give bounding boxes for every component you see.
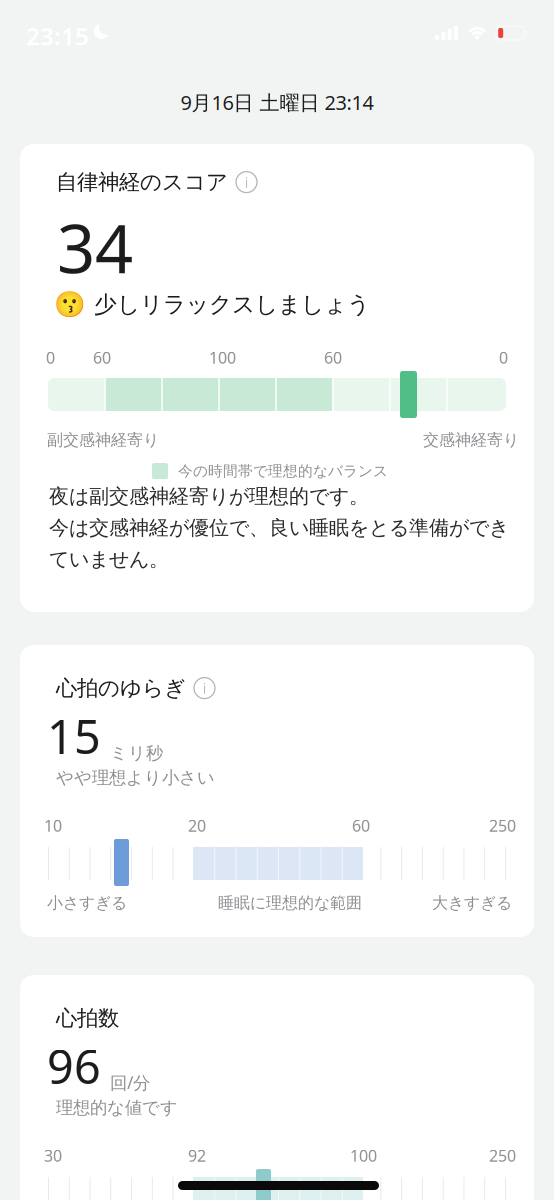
staticText: 15	[47, 705, 101, 767]
staticText: 60	[93, 347, 111, 368]
staticText: 34	[57, 203, 133, 291]
staticText: 9月16日 土曜日 23:14	[180, 89, 373, 116]
staticText: 60	[324, 347, 342, 368]
staticText: 😗	[54, 290, 86, 319]
staticText: 30	[44, 1145, 62, 1166]
staticText: 23:15	[26, 20, 89, 52]
staticText: 0	[46, 347, 55, 368]
staticText: ミリ秒	[110, 743, 163, 764]
staticText: 100	[350, 1145, 377, 1166]
staticText: i	[202, 678, 206, 698]
staticText: 回/分	[110, 1071, 150, 1094]
staticText: 0	[499, 347, 508, 368]
staticText: 60	[352, 815, 370, 836]
staticText: 自律神経のスコア	[56, 169, 228, 195]
staticText: やや理想より小さい	[56, 767, 215, 788]
button[interactable]: 自律神経のスコアについて	[236, 172, 257, 193]
staticText: 100	[209, 347, 236, 368]
staticText: 少しリラックスしましょう	[94, 291, 370, 318]
staticText: 心拍数	[56, 1005, 119, 1031]
staticText: 250	[489, 1145, 516, 1166]
staticText: 250	[489, 815, 516, 836]
staticText: 今の時間帯で理想的なバランス	[178, 462, 388, 480]
staticText: 理想的な値です	[56, 1097, 178, 1118]
staticText: 92	[188, 1145, 206, 1166]
staticText: 小さすぎる	[47, 893, 127, 913]
staticText: i	[244, 172, 248, 192]
staticText: 20	[188, 815, 206, 836]
button[interactable]: 心拍のゆらぎについて	[194, 678, 215, 699]
staticText: 副交感神経寄り	[47, 430, 159, 450]
staticText: 睡眠に理想的な範囲	[218, 893, 362, 913]
staticText: 96	[47, 1035, 101, 1097]
staticText: 夜は副交感神経寄りが理想的です。 今は交感神経が優位で、良い睡眠をとる準備ができ…	[49, 484, 509, 572]
staticText: 10	[44, 815, 62, 836]
staticText: 心拍のゆらぎ	[56, 675, 186, 701]
staticText: 交感神経寄り	[423, 430, 519, 450]
staticText: 大きすぎる	[432, 893, 512, 913]
